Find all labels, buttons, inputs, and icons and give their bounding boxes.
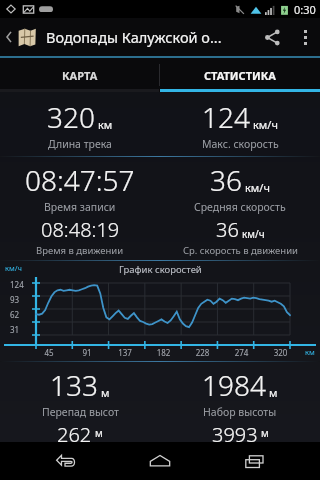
- staticText: 45: [30, 347, 68, 358]
- button[interactable]: Back: [35, 442, 95, 480]
- staticText: Ср. скорость в движении: [183, 244, 298, 257]
- staticText: 320: [261, 347, 300, 358]
- staticText: 124: [10, 279, 24, 290]
- staticText: 262: [57, 421, 92, 442]
- staticText: 36: [216, 216, 239, 243]
- staticText: СТАТИСТИКА: [204, 68, 276, 83]
- button[interactable]: Home: [130, 442, 190, 480]
- staticText: 91: [68, 347, 106, 358]
- staticText: График скоростей: [119, 263, 202, 276]
- staticText: 0:30: [294, 2, 316, 17]
- staticText: км: [98, 117, 113, 132]
- staticText: 62: [10, 309, 20, 320]
- staticText: 1984: [202, 366, 266, 404]
- staticText: КАРТА: [62, 68, 98, 83]
- staticText: Водопады Калужской о...: [46, 27, 222, 47]
- staticText: км/ч: [253, 117, 278, 132]
- staticText: км/ч: [5, 263, 22, 273]
- staticText: км/ч: [245, 180, 270, 195]
- staticText: м: [101, 385, 110, 400]
- staticText: 137: [106, 347, 144, 358]
- staticText: Средняя скорость: [194, 200, 286, 214]
- staticText: 228: [183, 347, 222, 358]
- staticText: Перепад высот: [42, 405, 119, 419]
- button[interactable]: More options: [290, 18, 320, 56]
- staticText: 08:48:19: [41, 216, 120, 243]
- button[interactable]: СТАТИСТИКА: [160, 58, 320, 92]
- button[interactable]: Recent apps: [225, 442, 285, 480]
- staticText: Набор высоты: [203, 405, 277, 419]
- staticText: км/ч: [242, 227, 265, 241]
- staticText: 320: [47, 98, 95, 136]
- staticText: м: [269, 385, 278, 400]
- button[interactable]: Share: [254, 18, 290, 56]
- staticText: 182: [144, 347, 183, 358]
- staticText: 133: [50, 366, 98, 404]
- staticText: 36: [210, 161, 242, 199]
- staticText: Макс. скорость: [202, 137, 279, 151]
- staticText: 274: [222, 347, 261, 358]
- staticText: Длина трека: [48, 137, 112, 151]
- staticText: м: [261, 426, 269, 440]
- staticText: км: [305, 347, 315, 357]
- staticText: 93: [10, 294, 20, 305]
- staticText: Время в движении: [36, 244, 124, 257]
- staticText: 3993: [212, 421, 258, 442]
- button[interactable]: Back: [0, 20, 40, 54]
- staticText: 124: [202, 98, 250, 136]
- staticText: м: [95, 426, 103, 440]
- staticText: Время записи: [44, 200, 116, 214]
- staticText: 31: [10, 324, 20, 335]
- staticText: 08:47:57: [25, 161, 135, 199]
- button[interactable]: КАРТА: [0, 58, 159, 92]
